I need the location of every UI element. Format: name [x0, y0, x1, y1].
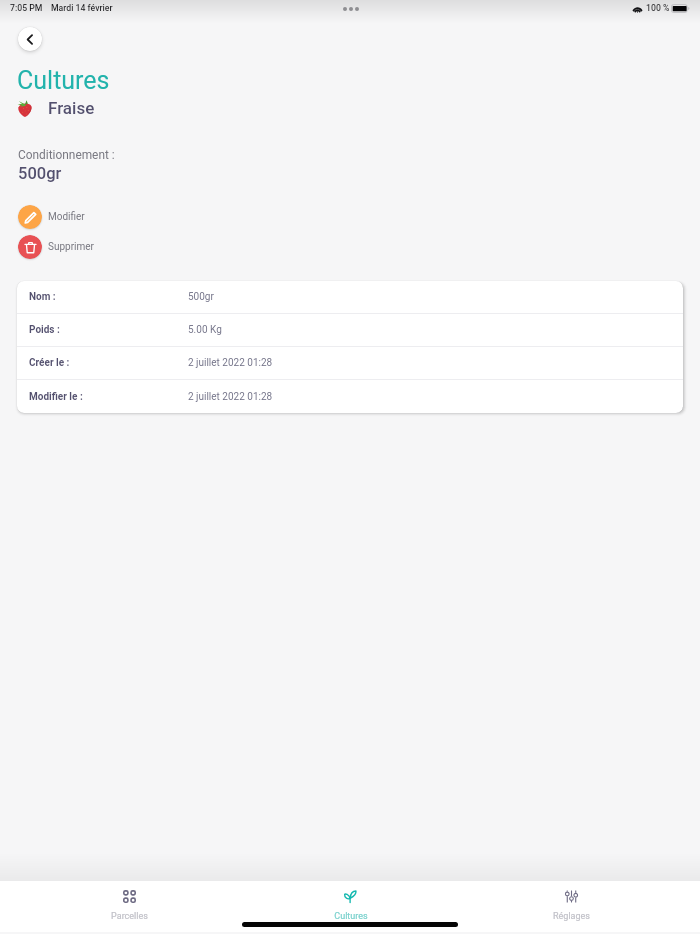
- button[interactable]: Nom :: [17, 281, 683, 313]
- button[interactable]: Réglages: [461, 881, 682, 932]
- button[interactable]: Modifier: [18, 205, 85, 229]
- button[interactable]: Cultures: [240, 881, 461, 932]
- staticText: 500gr: [18, 164, 62, 183]
- staticText: Fraise: [48, 98, 95, 118]
- staticText: Cultures: [334, 911, 368, 922]
- staticText: Nom :: [29, 291, 56, 303]
- staticText: Poids :: [29, 324, 60, 336]
- staticText: 2 juillet 2022 01:28: [188, 391, 273, 403]
- button[interactable]: Supprimer: [18, 235, 94, 259]
- staticText: Réglages: [553, 911, 590, 922]
- button[interactable]: Modifier le :: [17, 380, 683, 413]
- staticText: 500gr: [188, 291, 214, 303]
- button[interactable]: Poids :: [17, 314, 683, 346]
- staticText: 5.00 Kg: [188, 324, 222, 336]
- staticText: Modifier: [48, 211, 85, 223]
- button[interactable]: Parcelles: [18, 881, 240, 932]
- staticText: Mardi 14 février: [51, 3, 113, 13]
- staticText: 2 juillet 2022 01:28: [188, 357, 273, 369]
- staticText: Cultures: [17, 66, 110, 95]
- staticText: Modifier le :: [29, 391, 83, 403]
- staticText: Parcelles: [111, 911, 148, 922]
- staticText: 100 %: [646, 3, 670, 13]
- staticText: Conditionnement :: [18, 148, 115, 162]
- staticText: 7:05 PM: [10, 3, 43, 13]
- button[interactable]: Back: [18, 27, 42, 51]
- button[interactable]: Créer le :: [17, 347, 683, 379]
- staticText: Créer le :: [29, 357, 70, 369]
- staticText: Supprimer: [48, 241, 94, 253]
